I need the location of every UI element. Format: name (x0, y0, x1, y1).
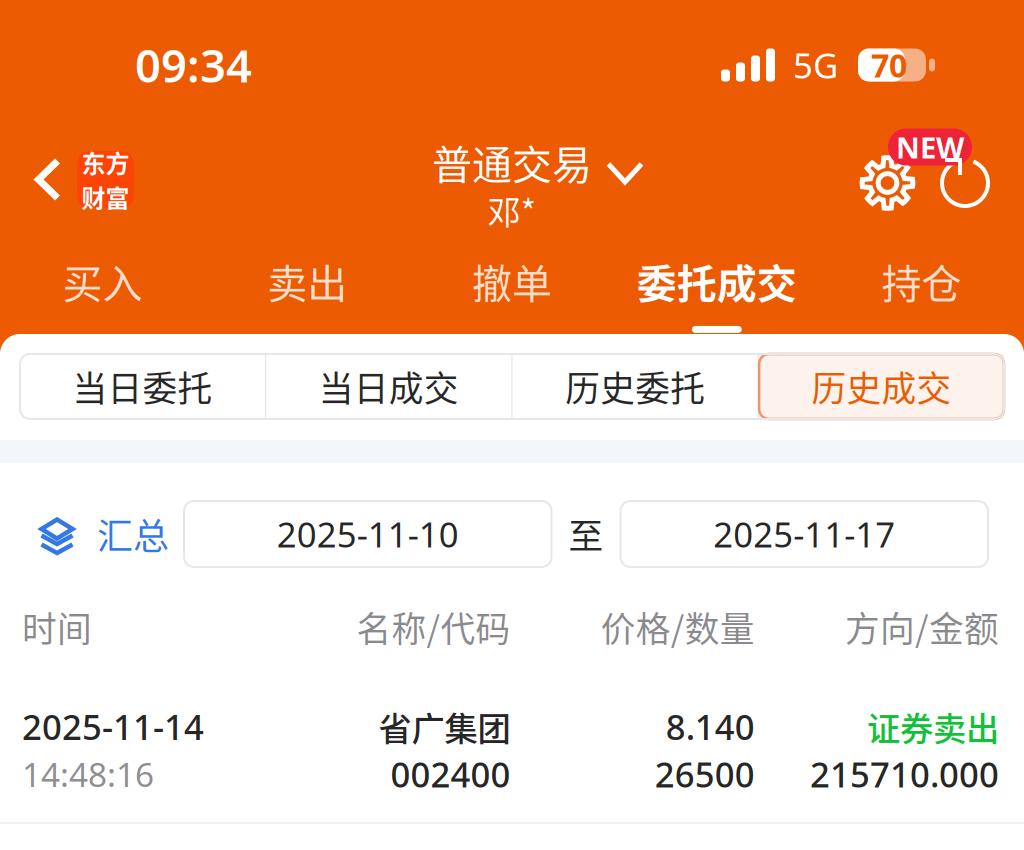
button[interactable]: 当日委托 (20, 354, 265, 419)
button[interactable]: Settings (860, 155, 915, 210)
staticText: 2025-11-17 (713, 511, 895, 557)
staticText: 8.140 (666, 703, 755, 749)
staticText: 时间 (22, 602, 92, 652)
staticText: 邓* (487, 186, 536, 234)
button[interactable]: 历史委托 (513, 354, 758, 419)
staticText: 东方 (81, 145, 129, 179)
staticText: 方向/金额 (845, 602, 999, 652)
staticText: 2025-11-14 (22, 703, 204, 749)
staticText: 名称/代码 (356, 602, 510, 652)
button[interactable]: 当日成交 (266, 354, 511, 419)
staticText: 26500 (655, 751, 755, 797)
staticText: NEW (896, 127, 964, 166)
button[interactable]: 持仓 (819, 240, 1024, 334)
staticText: 09:34 (135, 35, 252, 95)
staticText: 价格/数量 (601, 602, 755, 652)
staticText: 持仓 (882, 252, 962, 310)
button[interactable]: 2025-11-10 (184, 501, 551, 567)
staticText: 委托成交 (637, 252, 797, 310)
staticText: 历史委托 (565, 361, 705, 412)
button[interactable]: 普通交易 (334, 112, 674, 240)
button[interactable]: 买入 (0, 240, 205, 334)
staticText: 财富 (81, 179, 129, 214)
button[interactable]: 汇总 (0, 501, 169, 567)
staticText: 撤单 (472, 252, 552, 310)
staticText: 5G (793, 42, 838, 88)
button[interactable]: Refresh (940, 155, 990, 210)
staticText: 14:48:16 (22, 752, 154, 796)
button[interactable]: 历史成交 (759, 354, 1004, 419)
button[interactable]: 2025-11-17 (620, 501, 988, 567)
staticText: 普通交易 (432, 133, 592, 191)
button[interactable]: 委托成交 (614, 240, 819, 334)
button[interactable]: 卖出 (205, 240, 410, 334)
staticText: 卖出 (267, 252, 347, 310)
staticText: 2025-11-10 (277, 511, 459, 557)
staticText: 买入 (62, 252, 142, 310)
staticText: 70 (871, 44, 907, 86)
staticText: 历史成交 (812, 361, 952, 412)
staticText: 002400 (390, 751, 510, 797)
staticText: 当日成交 (319, 361, 459, 412)
staticText: 当日委托 (72, 361, 212, 412)
button[interactable]: 2025-11-14 (0, 658, 1024, 822)
staticText: 至 (568, 509, 603, 559)
staticText: 省广集团 (378, 702, 510, 751)
staticText: 215710.000 (810, 751, 999, 797)
button[interactable]: 撤单 (410, 240, 614, 334)
button[interactable]: Back (0, 112, 148, 240)
staticText: 证券卖出 (867, 702, 999, 751)
staticText: 汇总 (97, 508, 169, 560)
